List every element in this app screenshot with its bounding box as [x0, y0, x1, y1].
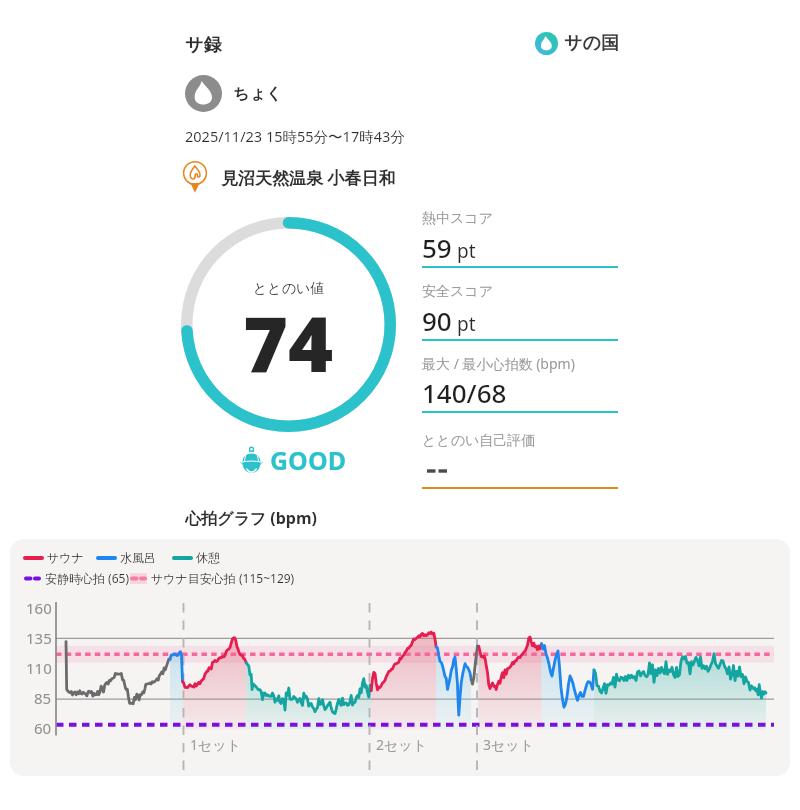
staticText: サ録 — [185, 34, 222, 57]
button[interactable]: 熱中スコア — [422, 210, 618, 283]
staticText: 1セット — [190, 735, 241, 754]
staticText: 心拍グラフ (bpm) — [185, 507, 317, 529]
staticText: 90 — [422, 303, 452, 338]
button[interactable]: ととのい自己評価 — [422, 427, 618, 489]
staticText: サウナ — [47, 550, 84, 565]
staticText: ととのい自己評価 — [422, 432, 536, 450]
staticText: 140/68 — [422, 375, 507, 410]
staticText: 最大 / 最小心拍数 (bpm) — [422, 354, 575, 373]
staticText: ちょく — [233, 84, 283, 104]
staticText: 59 — [422, 230, 452, 265]
staticText: 見沼天然温泉 小春日和 — [221, 166, 396, 189]
staticText: 2セット — [376, 735, 427, 754]
button[interactable]: GOOD — [238, 443, 346, 477]
staticText: 熱中スコア — [422, 210, 493, 228]
staticText: 安静時心拍 (65) — [45, 570, 130, 586]
button[interactable]: サの国 ホーム — [535, 32, 619, 55]
staticText: 85 — [34, 688, 52, 708]
staticText: pt — [452, 311, 476, 337]
staticText: 135 — [26, 628, 52, 648]
button[interactable]: 安全スコア — [422, 283, 618, 354]
staticText: 160 — [26, 598, 52, 618]
staticText: 2025/11/23 15時55分〜17時43分 — [185, 126, 405, 146]
button[interactable]: 見沼天然温泉 小春日和 — [178, 160, 396, 194]
button[interactable]: ちょく — [185, 75, 283, 112]
staticText: 60 — [34, 718, 52, 738]
staticText: 3セット — [483, 735, 534, 754]
staticText: ととのい値 — [253, 280, 325, 298]
staticText: サの国 — [564, 32, 619, 55]
button[interactable]: 最大 / 最小心拍数 (bpm) — [422, 354, 618, 427]
staticText: 74 — [243, 290, 334, 395]
staticText: サウナ目安心拍 (115~129) — [151, 570, 295, 586]
staticText: 110 — [26, 658, 52, 678]
staticText: 安全スコア — [422, 283, 493, 301]
staticText: 休憩 — [196, 550, 220, 565]
staticText: pt — [452, 238, 476, 264]
staticText: GOOD — [270, 443, 346, 477]
staticText: 水風呂 — [120, 550, 156, 565]
